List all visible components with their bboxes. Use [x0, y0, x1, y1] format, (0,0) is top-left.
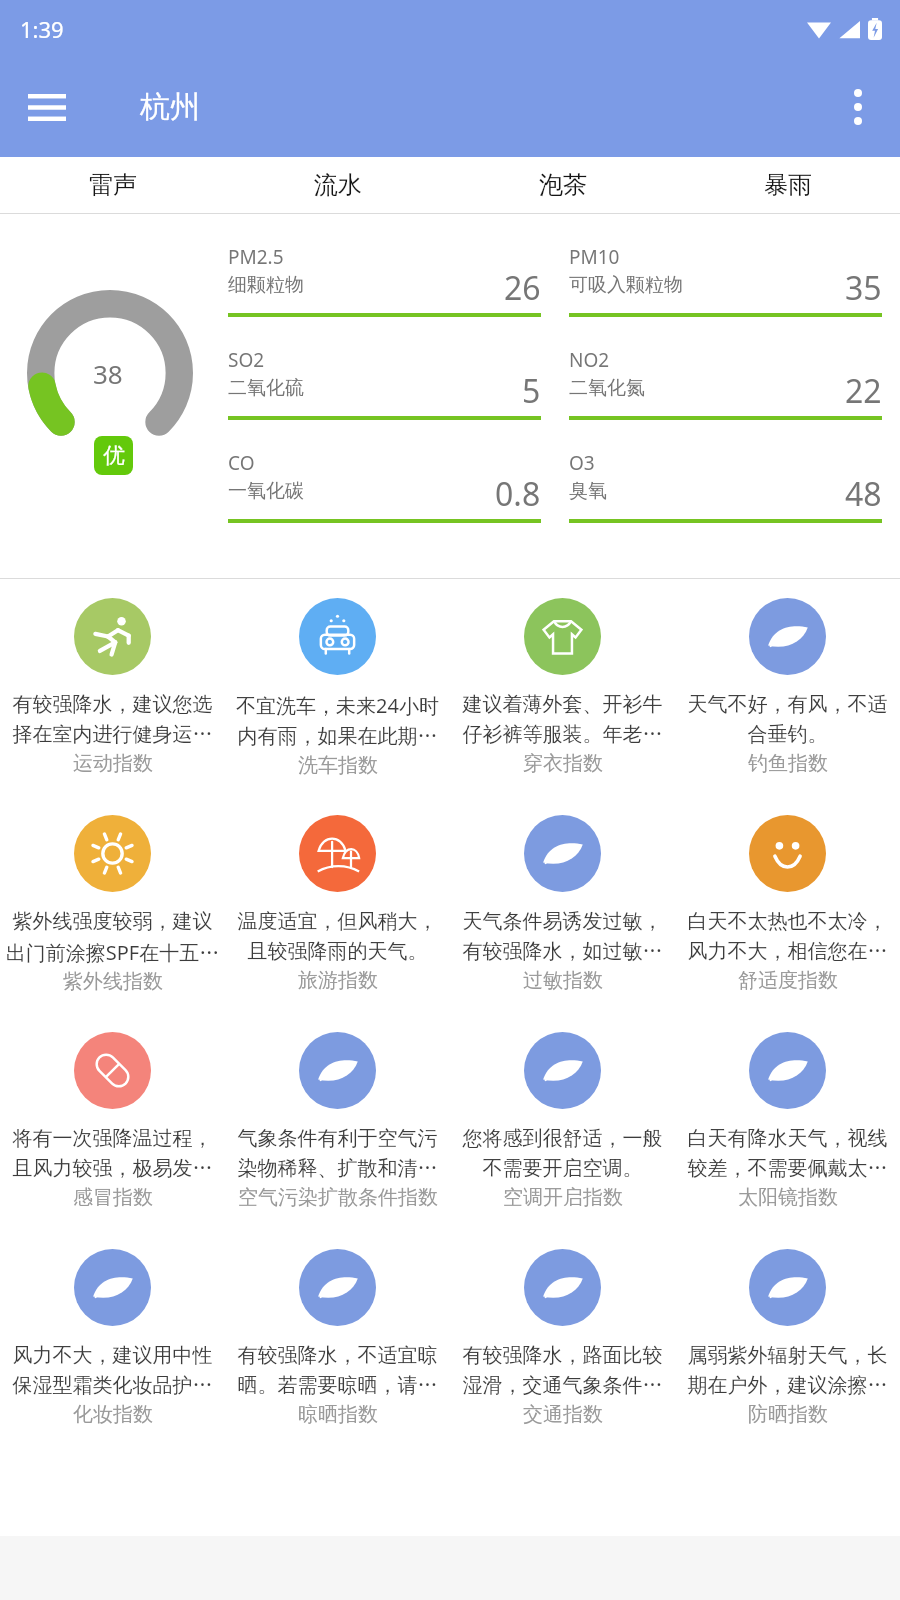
staticText: 穿衣指数: [523, 751, 603, 776]
staticText: 臭氧: [569, 479, 607, 503]
button[interactable]: 优: [94, 436, 133, 475]
staticText: 白天不太热也不太冷，风力不大，相信您在这样。: [680, 909, 895, 964]
button[interactable]: SO2: [228, 347, 541, 420]
staticText: 22: [845, 369, 882, 413]
button[interactable]: PM10: [569, 244, 882, 317]
button[interactable]: PM2.5: [228, 244, 541, 317]
staticText: 将有一次强降温过程，且风力较强，极易发生感冒。: [5, 1126, 220, 1181]
staticText: 有较强降水，不适宜晾晒。若需要晾晒，请在室内。: [230, 1343, 445, 1398]
staticText: NO2: [569, 347, 610, 373]
button[interactable]: 流水: [225, 157, 450, 213]
staticText: 空调开启指数: [503, 1185, 623, 1210]
staticText: 紫外线强度较弱，建议出门前涂擦SPF在十五以上。: [5, 909, 220, 965]
staticText: SO2: [228, 347, 265, 373]
staticText: 过敏指数: [523, 968, 603, 993]
staticText: 天气不好，有风，不适合垂钓。: [680, 692, 895, 747]
staticText: 26: [504, 266, 541, 310]
staticText: 有较强降水，建议您选择在室内进行健身运动。: [5, 692, 220, 747]
staticText: PM2.5: [228, 244, 284, 270]
button[interactable]: 温度适宜，但风稍大，且较强降雨的天气。: [225, 796, 450, 1013]
staticText: 48: [845, 472, 882, 516]
staticText: 防晒指数: [748, 1402, 828, 1427]
button[interactable]: 气象条件有利于空气污染物稀释、扩散和清除。: [225, 1013, 450, 1230]
button[interactable]: NO2: [569, 347, 882, 420]
staticText: 您将感到很舒适，一般不需要开启空调。: [455, 1126, 670, 1181]
staticText: 钓鱼指数: [748, 751, 828, 776]
button[interactable]: 有较强降水，建议您选择在室内进行健身运动。: [0, 579, 225, 796]
staticText: 舒适度指数: [738, 968, 838, 993]
staticText: 化妆指数: [73, 1402, 153, 1427]
staticText: 雷声: [89, 170, 137, 200]
button[interactable]: CO: [228, 450, 541, 523]
staticText: 交通指数: [523, 1402, 603, 1427]
staticText: 0.8: [495, 472, 541, 516]
staticText: 一氧化碳: [228, 479, 304, 503]
staticText: 属弱紫外辐射天气，长期在户外，建议涂擦防晒。: [680, 1343, 895, 1398]
staticText: 建议着薄外套、开衫牛仔衫裤等服装。年老体弱者。: [455, 692, 670, 747]
button[interactable]: 建议着薄外套、开衫牛仔衫裤等服装。年老体弱者。: [450, 579, 675, 796]
button[interactable]: 泡茶: [450, 157, 675, 213]
staticText: 二氧化硫: [228, 376, 304, 400]
staticText: 优: [103, 442, 125, 470]
button[interactable]: O3: [569, 450, 882, 523]
button[interactable]: 有较强降水，路面比较湿滑，交通气象条件一般。: [450, 1230, 675, 1447]
button[interactable]: 将有一次强降温过程，且风力较强，极易发生感冒。: [0, 1013, 225, 1230]
staticText: 暴雨: [764, 170, 812, 200]
staticText: 天气条件易诱发过敏，有较强降水，如过敏体质。: [455, 909, 670, 964]
staticText: 气象条件有利于空气污染物稀释、扩散和清除。: [230, 1126, 445, 1181]
button[interactable]: 暴雨: [675, 157, 900, 213]
staticText: 35: [845, 266, 882, 310]
staticText: 太阳镜指数: [738, 1185, 838, 1210]
button[interactable]: 白天有降水天气，视线较差，不需要佩戴太阳镜。: [675, 1013, 900, 1230]
staticText: 流水: [314, 170, 362, 200]
staticText: 空气污染扩散条件指数: [238, 1185, 438, 1210]
staticText: 杭州: [140, 88, 200, 126]
staticText: 运动指数: [73, 751, 153, 776]
staticText: 有较强降水，路面比较湿滑，交通气象条件一般。: [455, 1343, 670, 1398]
staticText: 不宜洗车，未来24小时内有雨，如果在此期间洗车。: [230, 692, 445, 749]
staticText: 5: [522, 369, 541, 413]
button[interactable]: 属弱紫外辐射天气，长期在户外，建议涂擦防晒。: [675, 1230, 900, 1447]
staticText: 泡茶: [539, 170, 587, 200]
staticText: 晾晒指数: [298, 1402, 378, 1427]
button[interactable]: 白天不太热也不太冷，风力不大，相信您在这样。: [675, 796, 900, 1013]
button[interactable]: 您将感到很舒适，一般不需要开启空调。: [450, 1013, 675, 1230]
staticText: 1:39: [20, 14, 64, 44]
button[interactable]: 风力不大，建议用中性保湿型霜类化妆品护肤。: [0, 1230, 225, 1447]
staticText: 洗车指数: [298, 753, 378, 778]
staticText: 旅游指数: [298, 968, 378, 993]
button[interactable]: 不宜洗车，未来24小时内有雨，如果在此期间洗车。: [225, 579, 450, 796]
staticText: 可吸入颗粒物: [569, 273, 683, 297]
staticText: 二氧化氮: [569, 376, 645, 400]
staticText: O3: [569, 450, 595, 476]
staticText: PM10: [569, 244, 620, 270]
staticText: 温度适宜，但风稍大，且较强降雨的天气。: [230, 909, 445, 964]
staticText: 细颗粒物: [228, 273, 304, 297]
staticText: 紫外线指数: [63, 969, 163, 994]
button[interactable]: 紫外线强度较弱，建议出门前涂擦SPF在十五以上。: [0, 796, 225, 1013]
button[interactable]: 天气条件易诱发过敏，有较强降水，如过敏体质。: [450, 796, 675, 1013]
button[interactable]: 有较强降水，不适宜晾晒。若需要晾晒，请在室内。: [225, 1230, 450, 1447]
staticText: 38: [93, 356, 123, 391]
button[interactable]: Open navigation menu: [16, 76, 78, 138]
staticText: 感冒指数: [73, 1185, 153, 1210]
button[interactable]: More options: [828, 77, 888, 137]
staticText: CO: [228, 450, 255, 476]
button[interactable]: 天气不好，有风，不适合垂钓。: [675, 579, 900, 796]
staticText: 白天有降水天气，视线较差，不需要佩戴太阳镜。: [680, 1126, 895, 1181]
staticText: 风力不大，建议用中性保湿型霜类化妆品护肤。: [5, 1343, 220, 1398]
button[interactable]: 雷声: [0, 157, 225, 213]
